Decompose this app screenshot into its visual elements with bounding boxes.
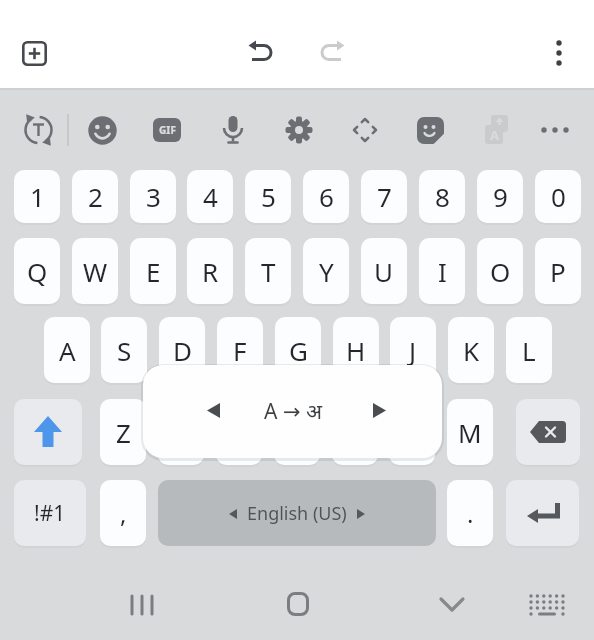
button[interactable]: !#1 <box>14 480 86 546</box>
button[interactable]: 7 <box>361 170 407 223</box>
staticText: Z <box>116 415 131 450</box>
button[interactable]: J <box>390 317 436 383</box>
staticText: A <box>490 126 499 144</box>
staticText: 7 <box>377 179 392 214</box>
button[interactable]: P <box>535 238 581 304</box>
button[interactable] <box>527 593 567 617</box>
staticText: F <box>233 333 247 368</box>
button[interactable] <box>548 38 570 68</box>
button[interactable] <box>129 593 155 617</box>
button[interactable]: 6 <box>303 170 349 223</box>
button[interactable] <box>417 117 444 144</box>
button[interactable]: I <box>419 238 465 304</box>
staticText: 4 <box>203 179 218 214</box>
staticText: 9 <box>493 179 508 214</box>
staticText: G <box>289 333 308 368</box>
button[interactable]: GIF <box>153 118 181 142</box>
button[interactable] <box>14 399 82 465</box>
staticText: K <box>463 333 480 368</box>
staticText: Y <box>319 254 334 289</box>
button[interactable]: 0 <box>535 170 581 223</box>
button[interactable]: L <box>506 317 552 383</box>
button[interactable]: 4 <box>187 170 233 223</box>
button[interactable] <box>351 116 379 144</box>
button[interactable]: V <box>274 399 320 465</box>
button[interactable]: G <box>275 317 321 383</box>
button[interactable] <box>285 116 313 144</box>
staticText: A → अ <box>264 397 322 426</box>
button[interactable]: B <box>332 399 378 465</box>
button[interactable]: E <box>130 238 176 304</box>
button[interactable]: , <box>100 480 146 546</box>
button[interactable]: D <box>159 317 205 383</box>
button[interactable]: A <box>44 317 90 383</box>
button[interactable] <box>287 592 309 616</box>
button[interactable] <box>506 480 579 546</box>
button[interactable]: 9 <box>477 170 523 223</box>
staticText: I <box>438 254 447 289</box>
button[interactable] <box>248 40 276 66</box>
button[interactable]: 5 <box>245 170 291 223</box>
button[interactable]: C <box>216 399 262 465</box>
button[interactable] <box>540 122 570 138</box>
button[interactable]: W <box>72 238 118 304</box>
button[interactable]: H <box>333 317 379 383</box>
button[interactable]: 2 <box>72 170 118 223</box>
button[interactable]: Z <box>100 399 146 465</box>
staticText: , <box>120 497 127 530</box>
staticText: M <box>458 415 482 450</box>
button[interactable]: O <box>477 238 523 304</box>
button[interactable]: . <box>447 480 493 546</box>
staticText: L <box>522 333 536 368</box>
staticText: 5 <box>261 179 276 214</box>
button[interactable]: S <box>101 317 147 383</box>
staticText: W <box>83 254 108 289</box>
button[interactable]: M <box>447 399 493 465</box>
button[interactable]: Y <box>303 238 349 304</box>
staticText: 0 <box>551 179 566 214</box>
button[interactable] <box>317 40 345 66</box>
staticText: O <box>490 254 511 289</box>
button[interactable] <box>438 594 466 616</box>
staticText: E <box>146 254 161 289</box>
staticText: P <box>550 254 566 289</box>
button[interactable]: A <box>483 115 511 145</box>
button[interactable]: A → अ <box>143 365 442 458</box>
staticText: GIF <box>159 123 176 137</box>
staticText: A <box>59 333 76 368</box>
button[interactable]: R <box>187 238 233 304</box>
button[interactable]: X <box>158 399 204 465</box>
button[interactable] <box>516 399 580 465</box>
button[interactable]: English (US) <box>158 480 436 546</box>
staticText: T <box>261 254 276 289</box>
button[interactable]: K <box>448 317 494 383</box>
button[interactable]: N <box>389 399 435 465</box>
staticText: 3 <box>146 179 161 214</box>
button[interactable]: 8 <box>419 170 465 223</box>
button[interactable]: 1 <box>14 170 60 223</box>
button[interactable]: U <box>361 238 407 304</box>
staticText: Q <box>27 254 48 289</box>
staticText: 2 <box>88 179 103 214</box>
button[interactable]: 3 <box>130 170 176 223</box>
staticText: U <box>374 254 394 289</box>
staticText: S <box>117 333 132 368</box>
staticText: 1 <box>30 179 45 214</box>
staticText: 8 <box>435 179 450 214</box>
button[interactable] <box>221 115 245 145</box>
staticText: D <box>173 333 192 368</box>
staticText: J <box>409 333 417 368</box>
button[interactable]: T <box>245 238 291 304</box>
button[interactable] <box>88 116 117 145</box>
button[interactable]: Q <box>14 238 60 304</box>
button[interactable] <box>22 41 47 66</box>
button[interactable]: F <box>217 317 263 383</box>
staticText: . <box>467 497 474 530</box>
staticText: V <box>289 415 305 450</box>
staticText: 6 <box>319 179 334 214</box>
button[interactable] <box>22 112 55 148</box>
